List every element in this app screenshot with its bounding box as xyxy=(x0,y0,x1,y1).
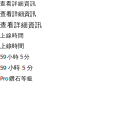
staticText: 上線時間 xyxy=(0,42,24,50)
staticText: 59 小時 5 分 xyxy=(0,53,30,60)
staticText: Pro 鑽石等級 xyxy=(0,75,33,82)
staticText: 59 小時 5 分 xyxy=(0,63,33,72)
staticText: 查看詳細資訊 xyxy=(0,21,42,29)
staticText: 上線時間 xyxy=(0,32,24,39)
staticText: 查看詳細資訊 xyxy=(0,10,36,18)
staticText: 查看詳細資訊 xyxy=(0,0,36,7)
